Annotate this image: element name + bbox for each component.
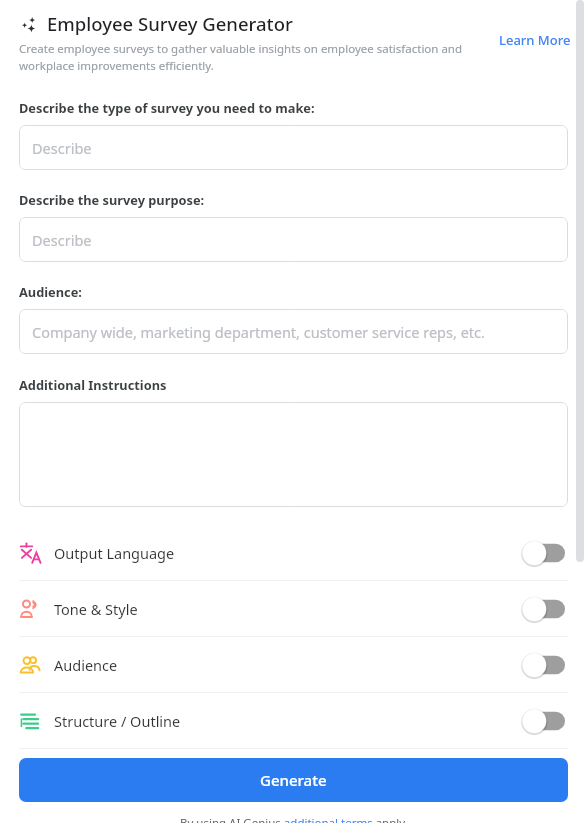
button[interactable]: Output Language <box>0 525 587 580</box>
button[interactable]: Describe <box>19 217 568 262</box>
staticText: Additional Instructions <box>19 376 167 393</box>
staticText: Create employee surveys to gather valuab… <box>19 41 487 73</box>
button[interactable]: Learn More <box>497 11 573 53</box>
staticText: Audience: <box>19 283 82 300</box>
staticText: Generate <box>260 770 327 790</box>
staticText: Structure / Outline <box>54 711 181 731</box>
staticText: Company wide, marketing department, cust… <box>32 322 485 342</box>
staticText: Employee Survey Generator <box>47 11 293 36</box>
staticText: Audience <box>54 655 118 675</box>
button[interactable]: Company wide, marketing department, cust… <box>19 309 568 354</box>
other: Tone and Style <box>19 598 41 620</box>
button[interactable]: Describe <box>19 125 568 170</box>
button[interactable]: By using AI Genius additional terms appl… <box>180 815 408 823</box>
staticText: Describe the type of survey you need to … <box>19 99 315 116</box>
staticText: Describe the survey purpose: <box>19 191 205 208</box>
staticText: Describe <box>32 230 92 250</box>
other: Structure and Outline <box>19 710 41 732</box>
button[interactable] <box>19 402 568 507</box>
button[interactable]: Structure and Outline <box>0 693 587 748</box>
staticText: Output Language <box>54 543 175 563</box>
staticText: Tone & Style <box>54 599 138 619</box>
other: Audience <box>19 654 41 676</box>
button[interactable]: Tone and Style <box>0 581 587 636</box>
staticText: Learn More <box>499 31 571 49</box>
other: Output Language <box>19 542 41 564</box>
staticText: Describe <box>32 138 92 158</box>
button[interactable]: Generate <box>19 758 568 802</box>
button[interactable]: Audience <box>0 637 587 692</box>
